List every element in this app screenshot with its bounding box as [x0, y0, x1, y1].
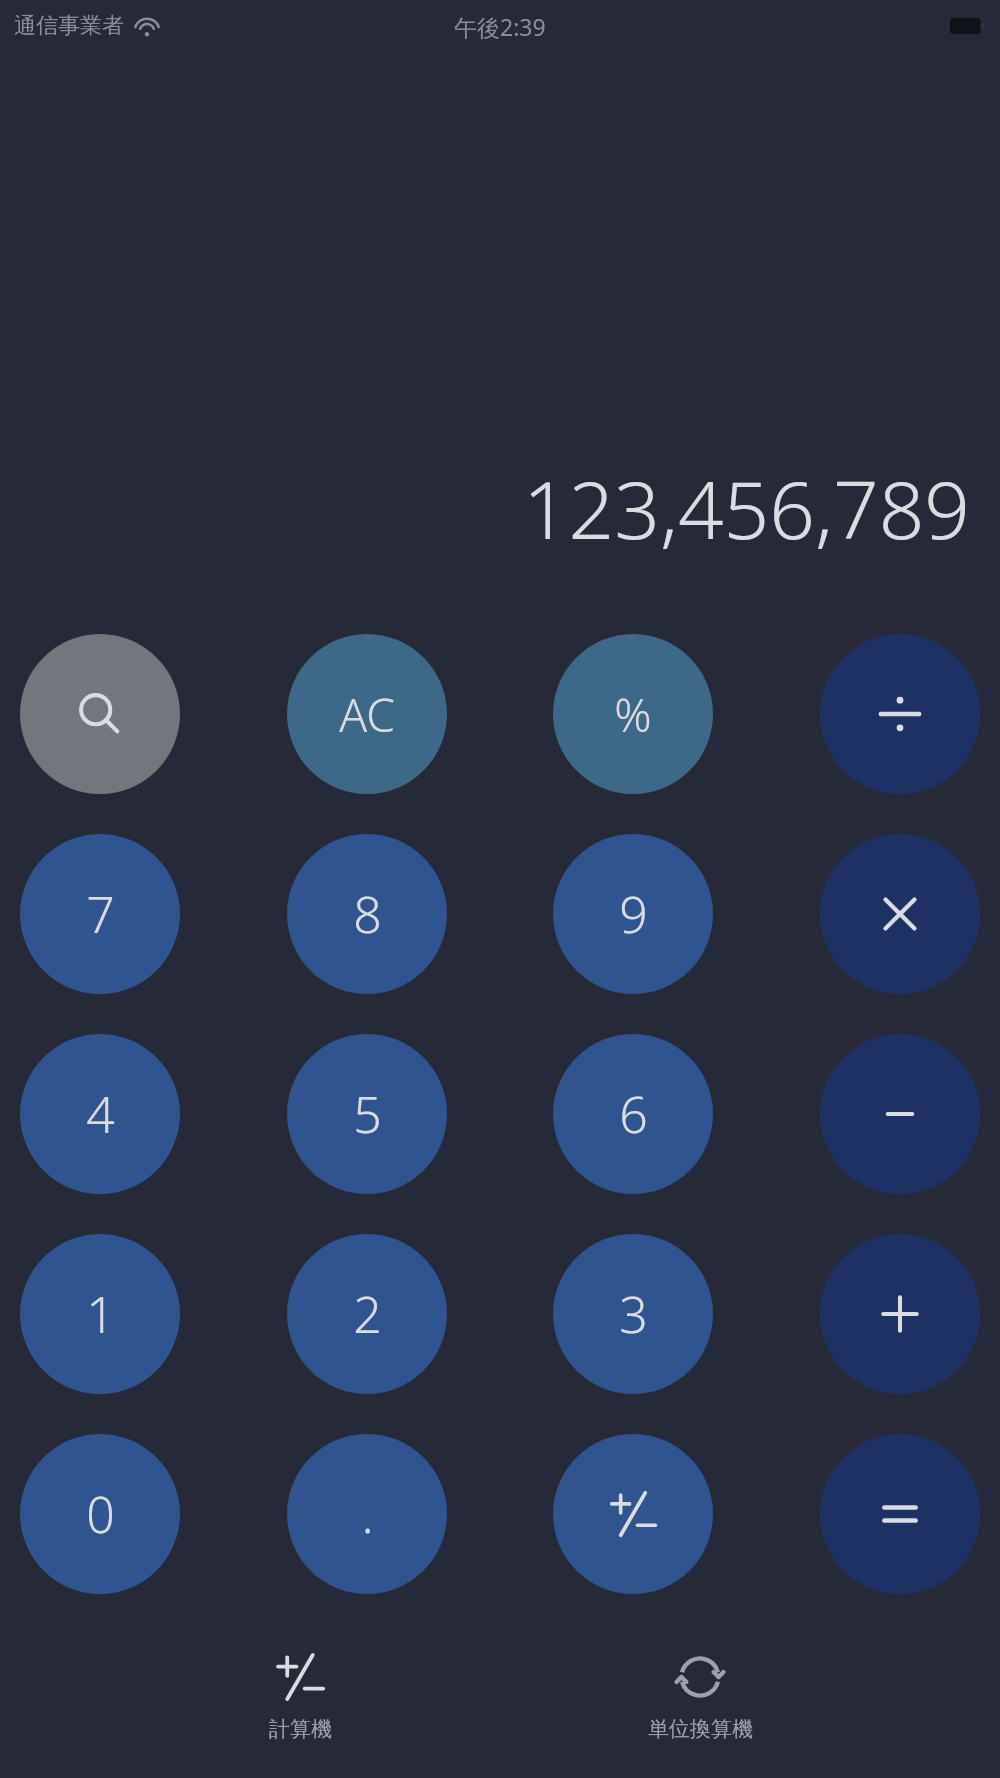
button[interactable]: 5 [287, 1034, 447, 1194]
staticText: 123,456,789 [522, 453, 970, 562]
button[interactable]: Calculator [200, 1644, 400, 1746]
button[interactable]: Minus [820, 1034, 980, 1194]
button[interactable]: . [287, 1434, 447, 1594]
button[interactable]: % [553, 634, 713, 794]
staticText: 1 [86, 1280, 115, 1348]
button[interactable]: 1 [20, 1234, 180, 1394]
staticText: 2 [353, 1280, 382, 1348]
other: Calculator [271, 1648, 329, 1706]
staticText: 8 [353, 880, 382, 948]
button[interactable]: Divide [820, 634, 980, 794]
staticText: 計算機 [269, 1716, 332, 1742]
button[interactable]: Unit converter [600, 1644, 800, 1746]
staticText: AC [339, 683, 395, 746]
button[interactable]: Search [20, 634, 180, 794]
button[interactable]: 2 [287, 1234, 447, 1394]
staticText: 午後2:39 [454, 11, 546, 42]
button[interactable]: Multiply [820, 834, 980, 994]
button[interactable]: AC [287, 634, 447, 794]
staticText: 4 [86, 1080, 115, 1148]
staticText: 9 [619, 880, 648, 948]
staticText: 3 [619, 1280, 648, 1348]
staticText: % [614, 683, 652, 746]
staticText: 0 [86, 1480, 115, 1548]
staticText: 6 [619, 1080, 648, 1148]
button[interactable]: 7 [20, 834, 180, 994]
staticText: 通信事業者 [14, 12, 124, 40]
button[interactable]: Equals [820, 1434, 980, 1594]
button[interactable]: 0 [20, 1434, 180, 1594]
staticText: . [361, 1480, 374, 1548]
button[interactable]: Toggle sign [553, 1434, 713, 1594]
button[interactable]: 8 [287, 834, 447, 994]
button[interactable]: 6 [553, 1034, 713, 1194]
staticText: 5 [353, 1080, 382, 1148]
button[interactable]: 4 [20, 1034, 180, 1194]
staticText: 単位換算機 [648, 1716, 753, 1742]
button[interactable]: 9 [553, 834, 713, 994]
button[interactable]: Plus [820, 1234, 980, 1394]
other: Unit converter [671, 1648, 729, 1706]
button[interactable]: 3 [553, 1234, 713, 1394]
staticText: 7 [86, 880, 115, 948]
